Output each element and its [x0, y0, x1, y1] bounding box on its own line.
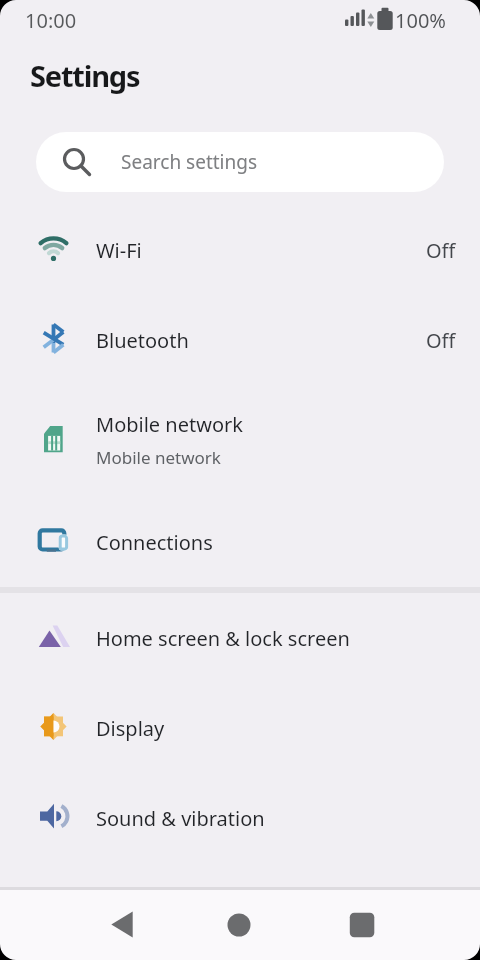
staticText: Home screen & lock screen: [96, 625, 350, 652]
button[interactable]: Sound & vibration: [0, 773, 480, 863]
staticText: Mobile network: [96, 446, 221, 469]
button[interactable]: [72, 890, 172, 960]
staticText: Sound & vibration: [96, 805, 265, 832]
staticText: Display: [96, 715, 165, 742]
staticText: Settings: [30, 56, 140, 95]
button[interactable]: [189, 890, 289, 960]
staticText: Mobile network: [96, 411, 243, 438]
staticText: Connections: [96, 529, 213, 556]
staticText: 100%: [395, 7, 446, 34]
staticText: Search settings: [121, 149, 258, 175]
button[interactable]: [312, 890, 412, 960]
button[interactable]: Wi-Fi: [0, 205, 480, 295]
staticText: Wi-Fi: [96, 237, 142, 264]
button[interactable]: Mobile network: [0, 385, 480, 497]
button[interactable]: Home screen & lock screen: [0, 593, 480, 683]
button[interactable]: Display: [0, 683, 480, 773]
button[interactable]: Search settings: [36, 132, 444, 192]
staticText: 10:00: [25, 7, 77, 34]
staticText: Off: [426, 327, 456, 354]
button[interactable]: Connections: [0, 497, 480, 587]
staticText: Bluetooth: [96, 327, 189, 354]
button[interactable]: Bluetooth: [0, 295, 480, 385]
staticText: Off: [426, 237, 456, 264]
